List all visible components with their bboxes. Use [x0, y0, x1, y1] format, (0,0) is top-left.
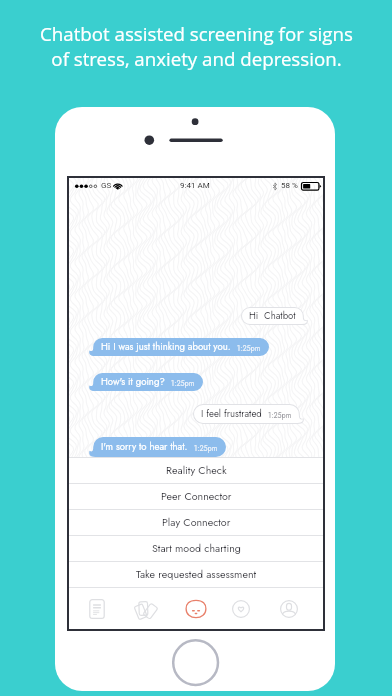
- staticText: Take requested assessment: [136, 567, 257, 582]
- staticText: 1:25pm: [194, 443, 218, 453]
- button[interactable]: Chatbot: [183, 596, 209, 622]
- button[interactable]: I'm sorry to hear that.: [89, 437, 226, 457]
- staticText: Hi Chatbot: [249, 309, 296, 323]
- staticText: 1:25pm: [268, 410, 292, 420]
- staticText: How's it going?: [101, 375, 165, 389]
- button[interactable]: Cards: [132, 596, 158, 622]
- staticText: 9:41 AM: [180, 181, 210, 190]
- button[interactable]: I feel frustrated: [193, 404, 304, 424]
- staticText: 58 %: [281, 181, 298, 190]
- button[interactable]: Start mood charting: [69, 535, 323, 561]
- staticText: 1:25pm: [237, 343, 261, 353]
- button[interactable]: Journal: [84, 596, 110, 622]
- button[interactable]: Peer Connector: [69, 483, 323, 509]
- button[interactable]: Take requested assessment: [69, 561, 323, 587]
- staticText: of stress, anxiety and depression.: [51, 46, 342, 71]
- staticText: Reality Check: [166, 463, 227, 478]
- staticText: I'm sorry to hear that.: [101, 440, 188, 454]
- button[interactable]: Reality Check: [69, 457, 323, 483]
- button[interactable]: Favourites: [228, 596, 254, 622]
- button[interactable]: How's it going?: [89, 373, 203, 391]
- staticText: Start mood charting: [152, 541, 241, 556]
- staticText: Peer Connector: [161, 489, 232, 504]
- staticText: 1:25pm: [171, 378, 195, 388]
- button[interactable]: Profile: [276, 596, 302, 622]
- button[interactable]: Play Connector: [69, 509, 323, 535]
- staticText: Chatbot assisted screening for signs: [40, 21, 353, 46]
- staticText: Play Connector: [162, 515, 231, 530]
- staticText: GS: [101, 181, 112, 190]
- staticText: Hi I was just thinking about you.: [101, 340, 231, 354]
- button[interactable]: Hi Chatbot: [241, 307, 308, 325]
- button[interactable]: Hi I was just thinking about you.: [89, 338, 269, 356]
- staticText: I feel frustrated: [201, 407, 262, 421]
